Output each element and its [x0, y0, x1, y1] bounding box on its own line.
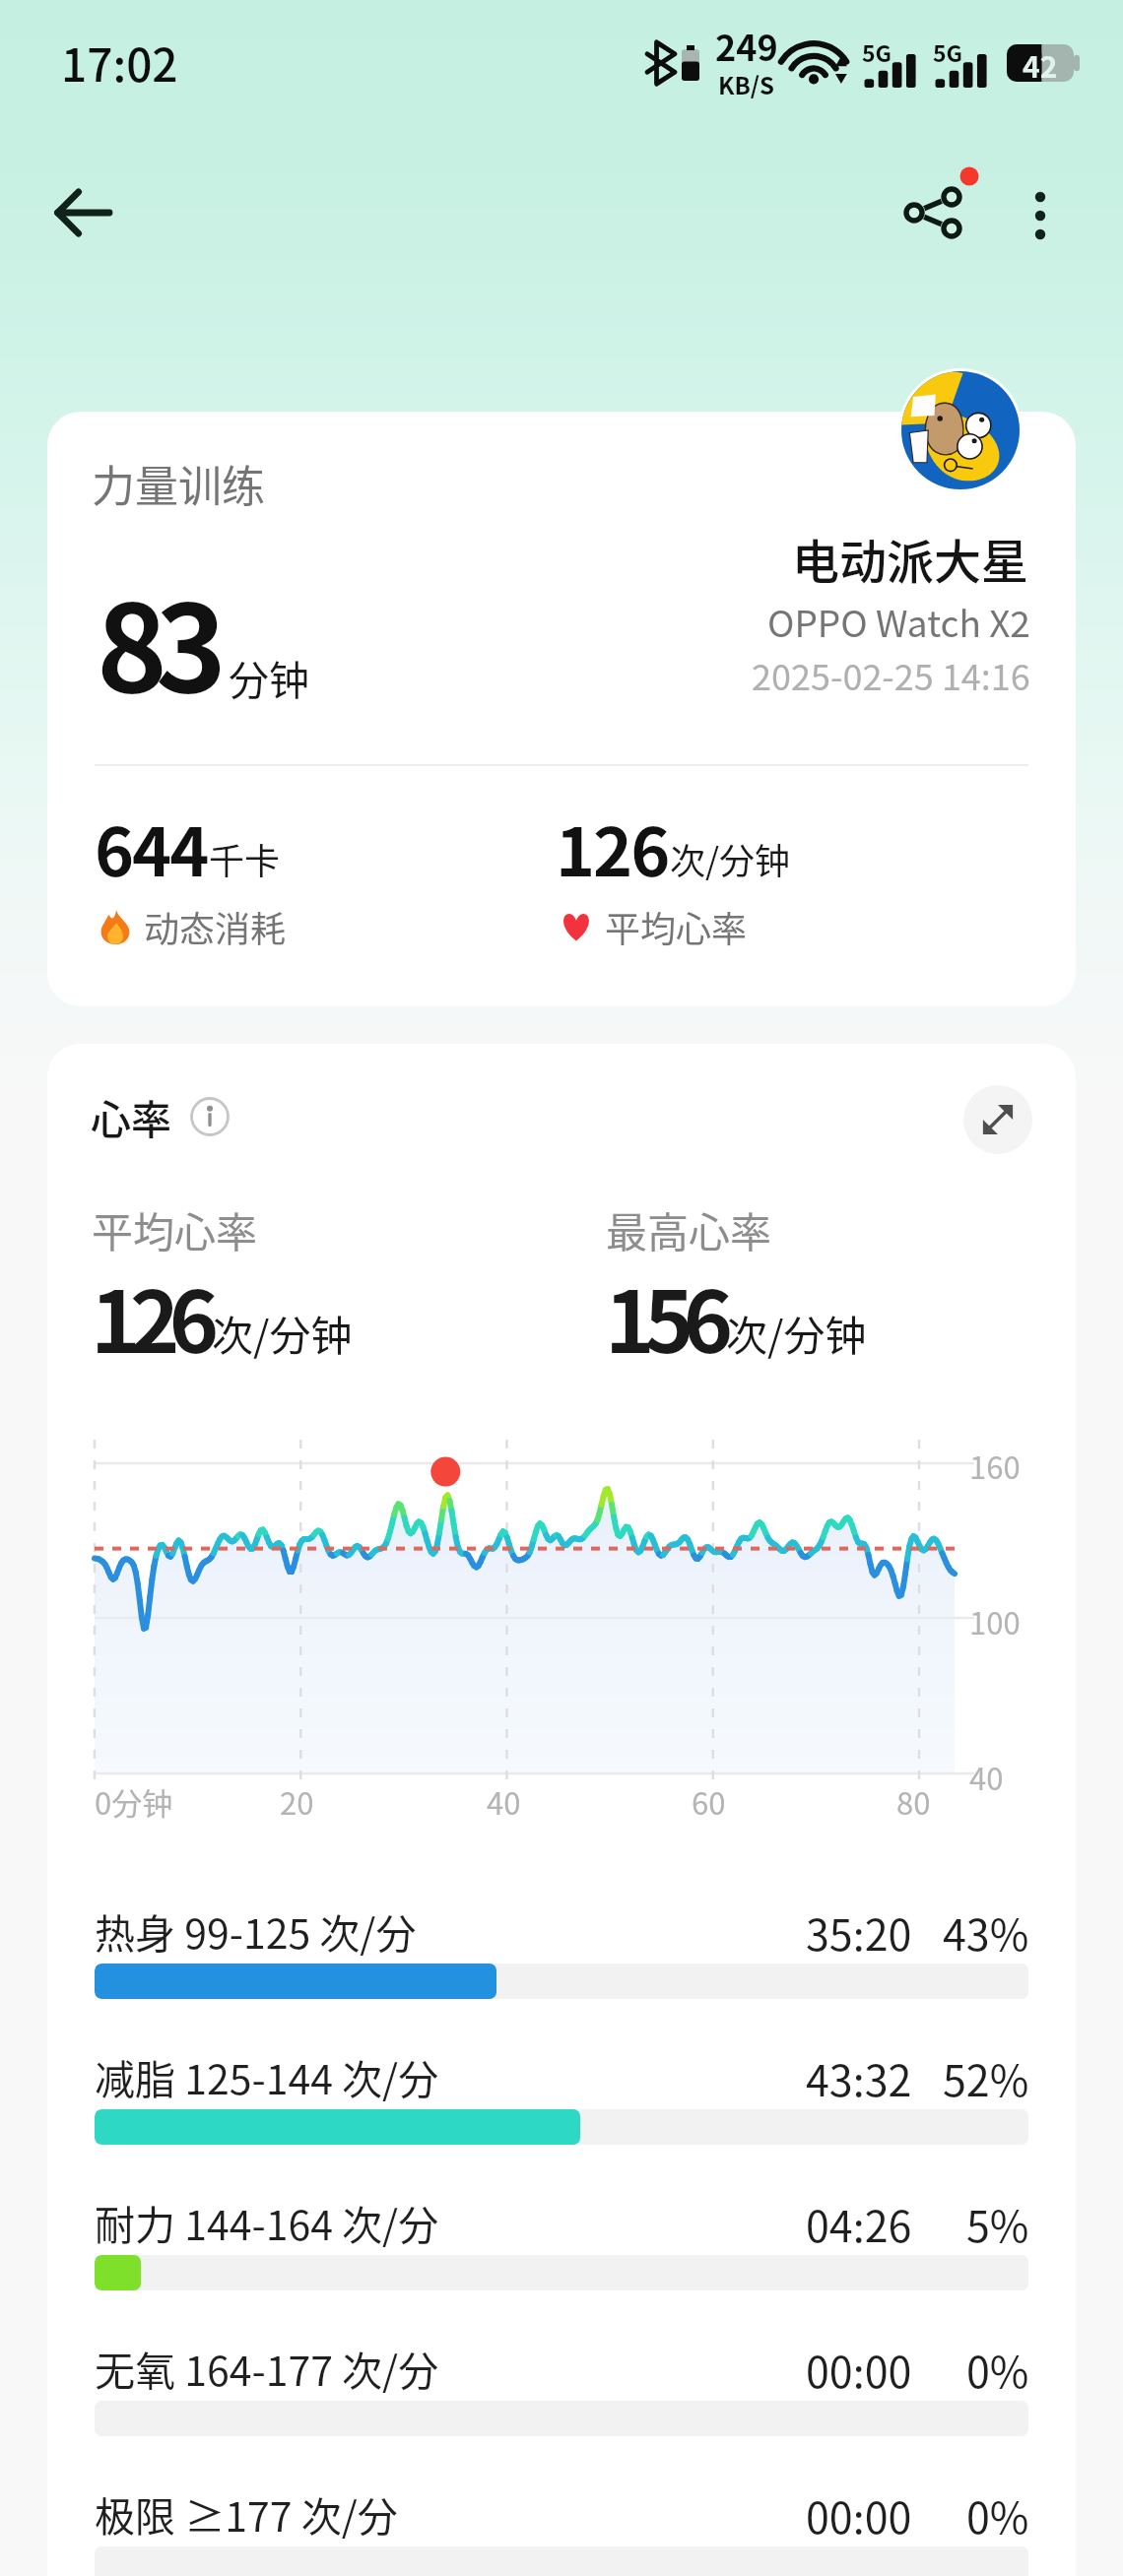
staticText: 极限 ≥177 次/分	[95, 2484, 398, 2543]
staticText: 减脂 125-144 次/分	[95, 2047, 439, 2105]
button[interactable]: 减脂 125-144 次/分	[95, 2027, 1028, 2145]
button[interactable]: 耐力 144-164 次/分	[95, 2172, 1028, 2290]
staticText: 0%	[966, 2339, 1029, 2400]
staticText: 力量训练	[92, 452, 265, 515]
staticText: 42	[1023, 43, 1058, 81]
staticText: 千卡	[209, 833, 281, 884]
button[interactable]: More options	[997, 166, 1084, 265]
staticText: 0分钟	[95, 1779, 173, 1824]
staticText: 40	[487, 1779, 521, 1824]
staticText: 动态消耗	[144, 901, 287, 952]
staticText: 80	[896, 1779, 931, 1824]
button[interactable]: 极限 ≥177 次/分	[95, 2464, 1028, 2576]
staticText: 0%	[966, 2484, 1029, 2545]
staticText: 43%	[943, 1901, 1029, 1963]
staticText: 644	[95, 799, 208, 895]
staticText: 249	[715, 20, 778, 71]
staticText: 2025-02-25 14:16	[752, 649, 1030, 700]
staticText: 52%	[943, 2047, 1029, 2108]
button[interactable]: Profile picture	[898, 368, 1023, 492]
staticText: 00:00	[806, 2484, 912, 2545]
staticText: 热身 99-125 次/分	[95, 1901, 417, 1960]
staticText: 5G	[933, 35, 963, 68]
staticText: KB/S	[718, 67, 775, 101]
staticText: 次/分钟	[212, 1303, 353, 1363]
staticText: 次/分钟	[726, 1303, 867, 1363]
staticText: 平均心率	[605, 901, 748, 952]
staticText: 156	[605, 1255, 723, 1378]
staticText: 160	[969, 1444, 1021, 1488]
staticText: 04:26	[806, 2193, 912, 2254]
staticText: 126	[556, 799, 669, 895]
button[interactable]: Info	[189, 1096, 231, 1137]
staticText: 83	[97, 552, 215, 727]
staticText: 17:02	[61, 30, 178, 96]
staticText: 最高心率	[606, 1199, 772, 1259]
staticText: 平均心率	[92, 1199, 258, 1259]
staticText: 分钟	[229, 648, 309, 706]
button[interactable]: Back	[33, 163, 132, 262]
staticText: 5%	[966, 2193, 1029, 2254]
staticText: 20	[280, 1779, 314, 1824]
staticText: 35:20	[806, 1901, 912, 1963]
staticText: 43:32	[806, 2047, 912, 2108]
staticText: OPPO Watch X2	[767, 595, 1030, 648]
staticText: 无氧 164-177 次/分	[95, 2339, 439, 2397]
button[interactable]: Share	[892, 153, 994, 271]
staticText: 心率	[91, 1087, 171, 1145]
staticText: 60	[692, 1779, 726, 1824]
button[interactable]: 热身 99-125 次/分	[95, 1881, 1028, 1999]
staticText: 00:00	[806, 2339, 912, 2400]
staticText: 5G	[862, 35, 892, 68]
staticText: 电动派大星	[792, 524, 1029, 593]
staticText: 100	[969, 1599, 1021, 1643]
staticText: 40	[969, 1755, 1004, 1799]
staticText: 次/分钟	[670, 833, 791, 884]
button[interactable]: 力量训练	[47, 412, 1076, 1006]
staticText: 126	[91, 1255, 209, 1378]
staticText: 耐力 144-164 次/分	[95, 2193, 439, 2251]
button[interactable]: Expand chart	[963, 1085, 1032, 1154]
button[interactable]: 无氧 164-177 次/分	[95, 2318, 1028, 2436]
